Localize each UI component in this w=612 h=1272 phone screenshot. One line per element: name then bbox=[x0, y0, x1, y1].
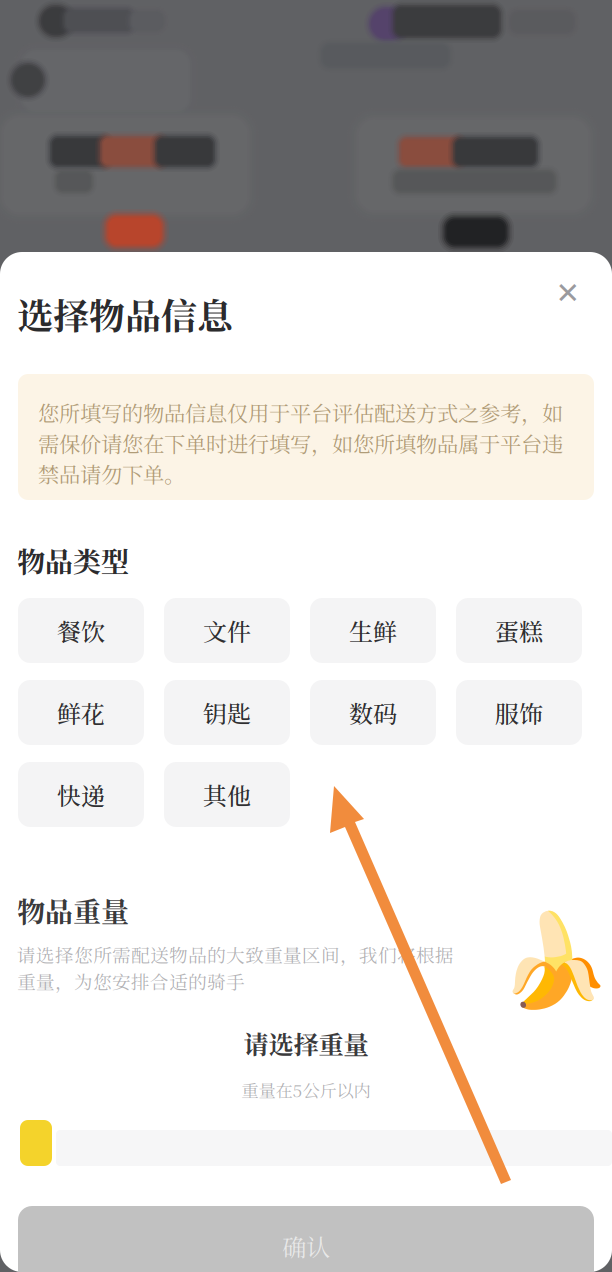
button[interactable]: 快递 bbox=[18, 762, 144, 827]
button[interactable]: 关闭 bbox=[547, 272, 589, 314]
button[interactable]: 确认 bbox=[18, 1206, 594, 1272]
staticText: 请选择您所需配送物品的大致重量区间，我们将根据 重量，为您安排合适的骑手 bbox=[17, 941, 454, 995]
staticText: 蛋糕 bbox=[495, 613, 543, 648]
staticText: 餐饮 bbox=[57, 613, 105, 648]
button[interactable]: 鲜花 bbox=[18, 680, 144, 745]
staticText: 确认 bbox=[282, 1229, 330, 1263]
button[interactable]: 生鲜 bbox=[310, 598, 436, 663]
staticText: 您所填写的物品信息仅用于平台评估配送方式之参考，如需保价请您在下单时进行填写，如… bbox=[38, 397, 563, 489]
staticText: 🍌 bbox=[498, 908, 611, 1014]
staticText: 服饰 bbox=[495, 695, 543, 730]
staticText: 选择物品信息 bbox=[17, 288, 233, 340]
staticText: 数码 bbox=[349, 695, 397, 730]
staticText: 生鲜 bbox=[349, 613, 397, 648]
button[interactable]: 文件 bbox=[164, 598, 290, 663]
staticText: 物品重量 bbox=[17, 890, 129, 930]
staticText: 其他 bbox=[203, 777, 251, 812]
staticText: 文件 bbox=[203, 613, 251, 648]
button[interactable]: 钥匙 bbox=[164, 680, 290, 745]
staticText: 物品类型 bbox=[17, 540, 129, 580]
staticText: 快递 bbox=[57, 777, 105, 812]
staticText: 重量在5公斤以内 bbox=[241, 1077, 370, 1102]
staticText: 鲜花 bbox=[57, 695, 105, 730]
button[interactable]: 数码 bbox=[310, 680, 436, 745]
button[interactable]: 服饰 bbox=[456, 680, 582, 745]
button[interactable]: 其他 bbox=[164, 762, 290, 827]
staticText: 钥匙 bbox=[203, 695, 251, 730]
button[interactable]: 蛋糕 bbox=[456, 598, 582, 663]
staticText: ✕ bbox=[555, 276, 580, 310]
staticText: 请选择重量 bbox=[243, 1025, 368, 1061]
button[interactable]: 餐饮 bbox=[18, 598, 144, 663]
